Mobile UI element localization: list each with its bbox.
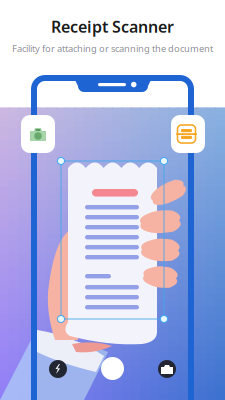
button[interactable]: Take photo xyxy=(21,115,55,153)
staticText: Receipt Scanner xyxy=(51,16,174,37)
button[interactable]: Scan document xyxy=(171,115,205,153)
staticText: Facility for attaching or scanning the d… xyxy=(12,42,213,55)
button[interactable]: Capture xyxy=(101,357,124,380)
button[interactable]: Flash xyxy=(49,360,67,378)
button[interactable]: Switch camera xyxy=(158,360,176,378)
